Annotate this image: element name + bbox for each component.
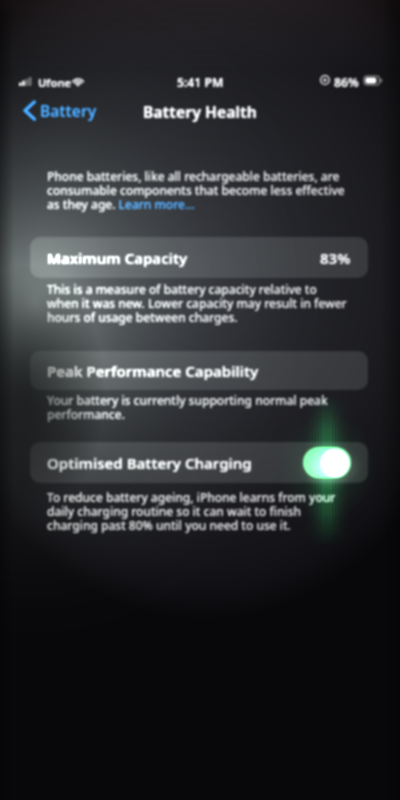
staticText: Your battery is currently supporting nor… — [47, 392, 349, 423]
staticText: Phone batteries, like all rechargeable b… — [47, 168, 349, 213]
button[interactable]: Battery — [23, 98, 97, 122]
button[interactable]: Maximum Capacity — [30, 237, 368, 278]
button[interactable]: Optimised Battery Charging — [30, 442, 368, 483]
button[interactable]: Peak Performance Capability — [30, 351, 368, 390]
staticText: To reduce battery ageing, iPhone learns … — [47, 489, 349, 534]
staticText: Battery — [40, 100, 97, 121]
staticText: 86% — [334, 74, 359, 91]
staticText: Optimised Battery Charging — [47, 453, 252, 473]
staticText: 5:41 PM — [177, 74, 224, 91]
staticText: This is a measure of battery capacity re… — [47, 281, 349, 326]
staticText: Maximum Capacity — [47, 248, 188, 268]
staticText: 83% — [320, 248, 351, 268]
staticText: Peak Performance Capability — [47, 361, 259, 381]
button[interactable]: Optimised Battery Charging, on — [303, 447, 351, 478]
staticText: Battery Health — [143, 101, 257, 122]
staticText: Ufone — [38, 75, 72, 90]
